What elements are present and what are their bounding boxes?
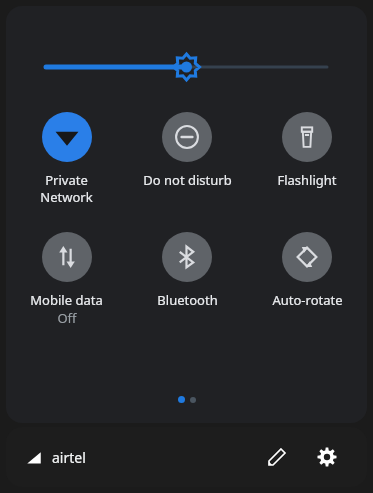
staticText: Do not disturb	[143, 171, 232, 189]
button[interactable]: Brightness	[40, 52, 333, 82]
button[interactable]: airtel	[26, 448, 86, 467]
button[interactable]: Auto-rotate	[247, 232, 367, 309]
staticText: airtel	[52, 448, 86, 467]
staticText: Bluetooth	[157, 291, 218, 309]
staticText: Flashlight	[277, 171, 337, 189]
button[interactable]: Mobile data	[6, 232, 127, 327]
button[interactable]: Settings	[307, 437, 347, 477]
button[interactable]: Flashlight	[247, 112, 367, 189]
staticText: Off	[57, 309, 77, 327]
button[interactable]: Do not disturb	[127, 112, 247, 189]
button[interactable]: Private Network	[6, 112, 127, 206]
button[interactable]: Edit	[257, 437, 297, 477]
staticText: Private Network	[40, 171, 93, 206]
staticText: Mobile data	[30, 291, 103, 309]
staticText: Auto-rotate	[272, 291, 343, 309]
button[interactable]: Bluetooth	[127, 232, 247, 309]
